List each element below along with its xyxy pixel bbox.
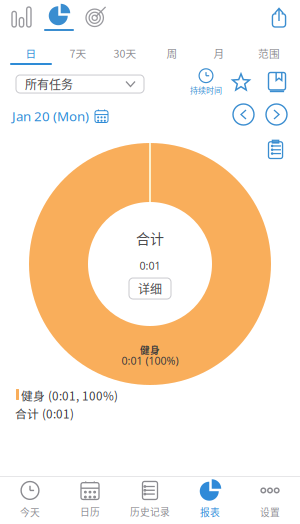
button[interactable]: 所有任务 xyxy=(16,75,144,93)
staticText: 合计 (0:01) xyxy=(15,405,74,422)
staticText: Jan 20 (Mon) xyxy=(12,107,89,125)
button[interactable]: Bar chart xyxy=(7,3,36,31)
staticText: 历史记录 xyxy=(130,504,170,519)
button[interactable]: 今天 xyxy=(0,477,60,524)
staticText: 今天 xyxy=(20,505,40,519)
button[interactable]: 月 xyxy=(196,45,242,67)
button[interactable]: Share xyxy=(265,3,293,31)
button[interactable]: Jan 20 (Mon) xyxy=(12,107,108,125)
staticText: 设置 xyxy=(260,505,280,519)
button[interactable]: Previous day xyxy=(233,104,254,125)
staticText: 7天 xyxy=(69,45,86,61)
staticText: 周 xyxy=(166,45,177,61)
staticText: 0:01 (100%) xyxy=(121,353,178,368)
button[interactable]: 报表 xyxy=(180,477,240,524)
button[interactable]: 历史记录 xyxy=(120,477,180,524)
staticText: 日 xyxy=(25,45,36,61)
button[interactable]: Saved reports xyxy=(263,68,291,96)
button[interactable]: 详细 xyxy=(129,278,171,299)
button[interactable]: 设置 xyxy=(240,477,300,524)
staticText: 健身 (0:01, 100%) xyxy=(21,387,118,404)
staticText: 持续时间 xyxy=(190,84,222,96)
button[interactable]: Goals xyxy=(81,3,110,31)
button[interactable]: 30天 xyxy=(102,45,148,67)
staticText: 范围 xyxy=(258,45,280,61)
staticText: 健身 xyxy=(140,342,160,356)
button[interactable]: 范围 xyxy=(246,45,292,67)
staticText: 报表 xyxy=(200,505,220,519)
button[interactable]: Pie chart xyxy=(44,3,74,33)
button[interactable]: 日 xyxy=(8,45,54,67)
button[interactable]: 周 xyxy=(149,45,195,67)
staticText: 月 xyxy=(213,45,224,61)
button[interactable]: Time log xyxy=(266,137,290,161)
button[interactable]: 7天 xyxy=(55,45,101,67)
staticText: 0:01 xyxy=(139,258,160,273)
button[interactable]: Favourites xyxy=(227,68,255,96)
staticText: 日历 xyxy=(80,504,100,519)
staticText: 详细 xyxy=(138,280,162,297)
staticText: 所有任务 xyxy=(25,75,73,93)
button[interactable]: Duration xyxy=(186,68,226,96)
button[interactable]: 日历 xyxy=(60,477,120,524)
staticText: 合计 xyxy=(136,228,164,248)
staticText: 30天 xyxy=(113,45,136,61)
button[interactable]: Next day xyxy=(266,104,287,125)
